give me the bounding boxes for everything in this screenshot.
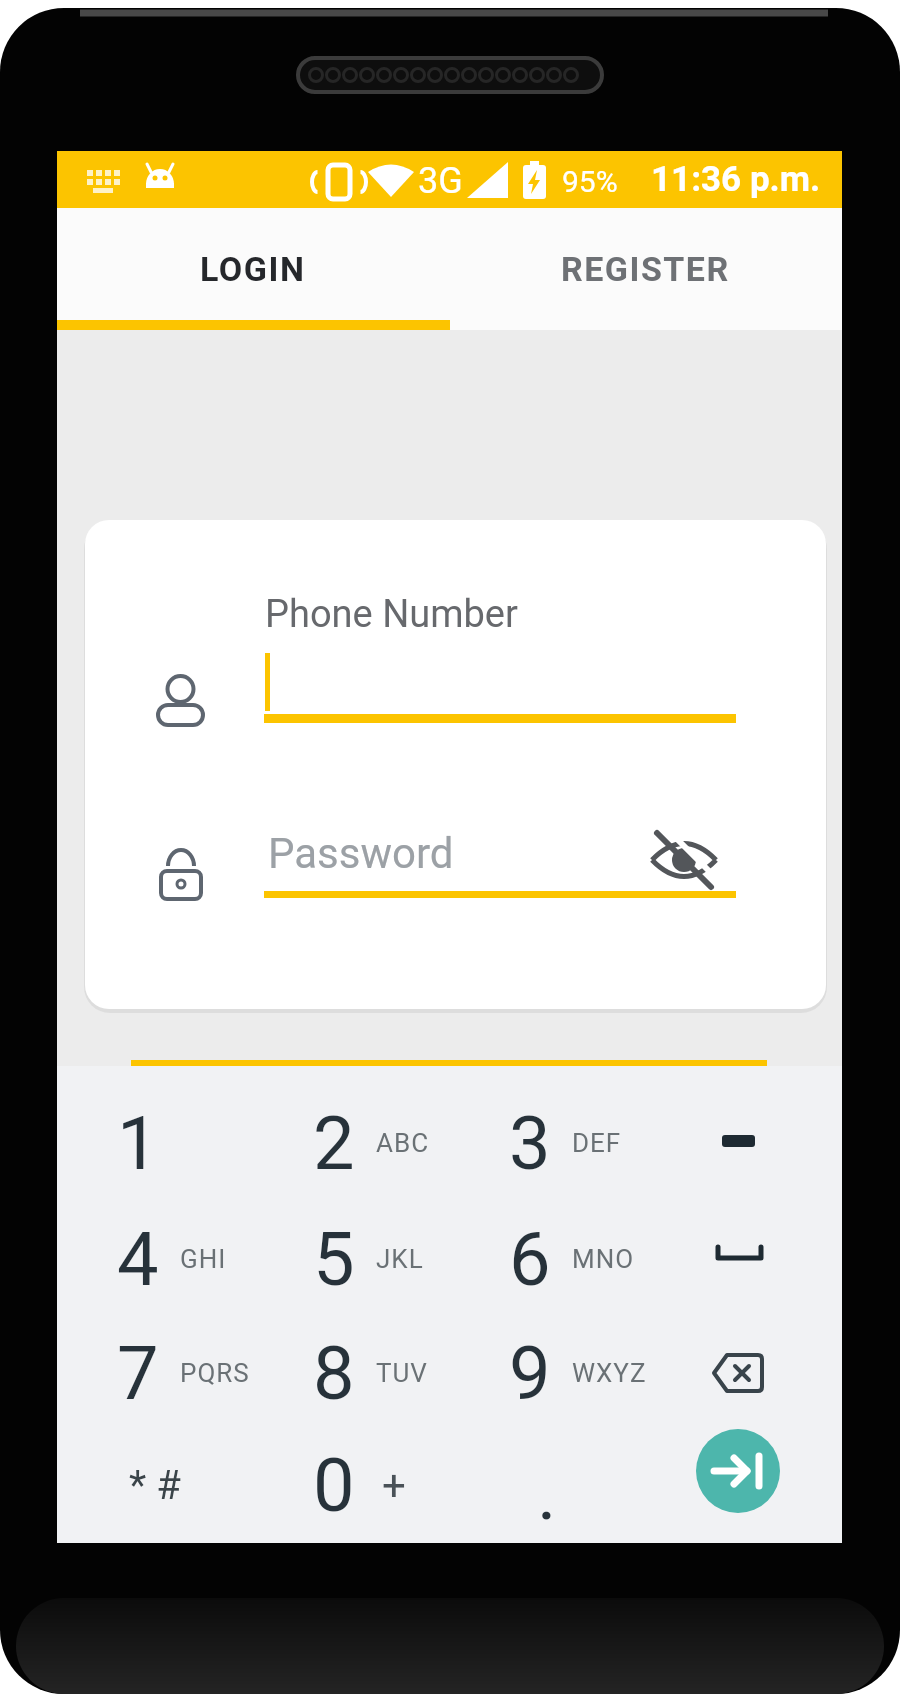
staticText: + <box>382 1461 406 1510</box>
button[interactable]: 5 <box>253 1201 449 1317</box>
staticText: Password <box>268 829 454 878</box>
button[interactable] <box>696 1429 780 1513</box>
staticText: 2 <box>313 1100 355 1187</box>
button[interactable]: 6 <box>449 1201 645 1317</box>
staticText: PQRS <box>180 1358 250 1388</box>
staticText: MNO <box>572 1244 635 1274</box>
staticText: TUV <box>376 1358 428 1388</box>
staticText: 8 <box>313 1330 355 1417</box>
button[interactable]: 7 <box>57 1315 253 1431</box>
staticText: 3 <box>509 1100 551 1187</box>
button[interactable] <box>712 1353 764 1393</box>
staticText: 9 <box>509 1330 551 1417</box>
staticText: Phone Number <box>265 592 518 637</box>
button[interactable]: LOGIN <box>57 208 449 330</box>
staticText: 1 <box>117 1100 159 1187</box>
button[interactable]: 2 <box>253 1085 449 1201</box>
button[interactable] <box>642 822 714 890</box>
button[interactable]: 9 <box>449 1315 645 1431</box>
staticText: 6 <box>509 1216 551 1303</box>
staticText: 11:36 p.m. <box>651 159 821 200</box>
staticText: JKL <box>376 1244 424 1274</box>
button[interactable]: . <box>449 1427 645 1543</box>
staticText: DEF <box>572 1128 622 1158</box>
button[interactable]: 0 <box>253 1427 449 1543</box>
staticText: GHI <box>180 1244 227 1274</box>
staticText: LOGIN <box>200 249 306 289</box>
staticText: 3G <box>418 160 463 202</box>
button[interactable]: REGISTER <box>449 208 842 330</box>
button[interactable] <box>722 1135 755 1147</box>
staticText: 95% <box>562 164 618 199</box>
staticText: 5 <box>313 1216 355 1303</box>
button[interactable]: 1 <box>57 1085 253 1201</box>
button[interactable]: 8 <box>253 1315 449 1431</box>
staticText: . <box>539 1471 555 1532</box>
button[interactable]: * # <box>57 1427 253 1543</box>
staticText: REGISTER <box>561 249 730 289</box>
button[interactable]: 3 <box>449 1085 645 1201</box>
staticText: * # <box>129 1462 181 1509</box>
staticText: 7 <box>117 1330 159 1417</box>
staticText: 4 <box>117 1216 159 1303</box>
staticText: 0 <box>313 1442 355 1529</box>
staticText: ABC <box>376 1128 430 1158</box>
staticText: WXYZ <box>572 1358 645 1388</box>
button[interactable] <box>716 1247 763 1261</box>
button[interactable]: 4 <box>57 1201 253 1317</box>
